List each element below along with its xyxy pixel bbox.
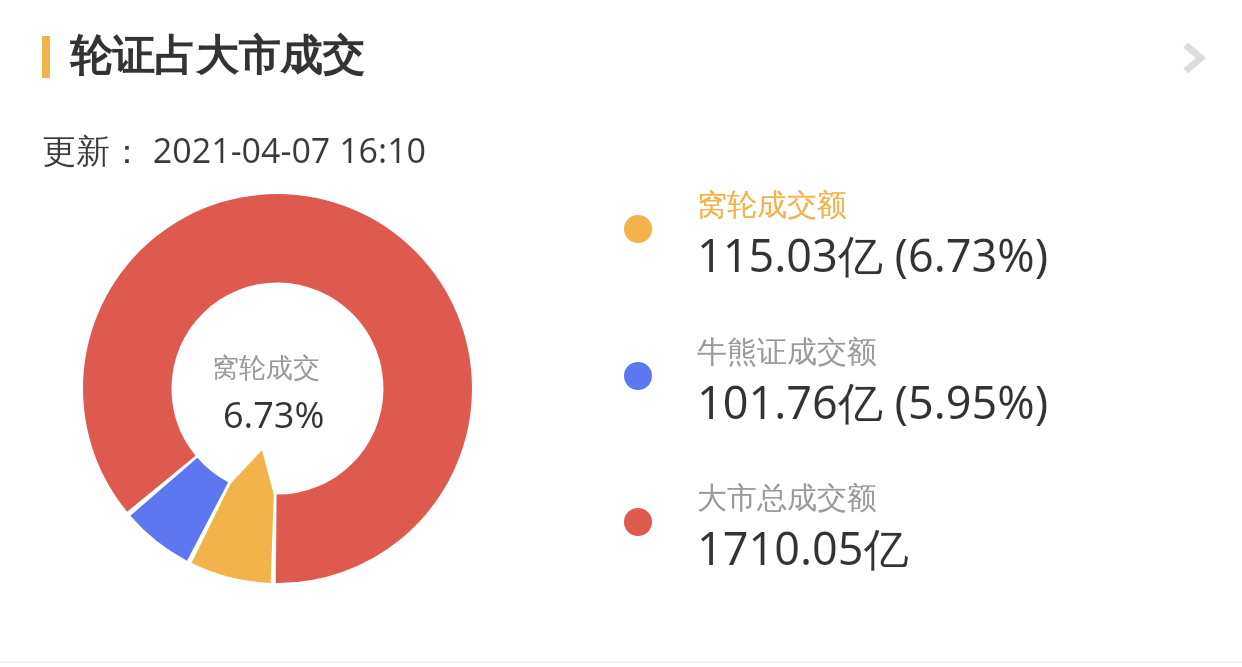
button[interactable]: 轮证占大市成交 [0,0,1242,112]
staticText: 牛熊证成交额 [697,333,877,371]
staticText: 更新： 2021-04-07 16:10 [42,127,427,173]
staticText: 6.73% [223,390,325,439]
staticText: 1710.05亿 [697,517,909,578]
staticText: 轮证占大市成交 [70,30,364,83]
staticText: 窝轮成交 [212,351,320,385]
other: 查看详情 [1160,26,1224,90]
staticText: 窝轮成交额 [697,186,847,224]
button[interactable]: 牛熊证成交额 [606,311,1206,443]
staticText: 大市总成交额 [697,479,877,517]
button[interactable]: 窝轮成交额 [606,164,1206,296]
staticText: 101.76亿 (5.95%) [697,371,1049,432]
button[interactable]: 大市总成交额 [606,457,1206,589]
staticText: 115.03亿 (6.73%) [697,224,1049,285]
